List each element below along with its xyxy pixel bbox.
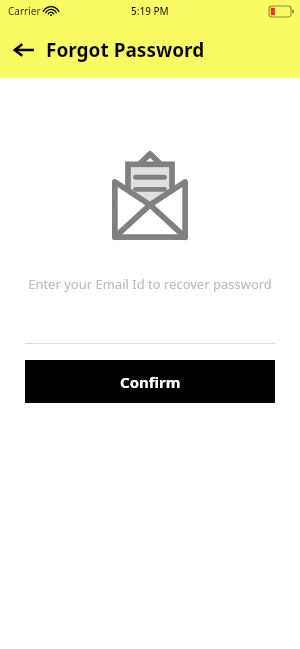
staticText: Forgot Password [46, 37, 205, 63]
button[interactable]: Back [8, 34, 40, 66]
staticText: 5:19 PM [131, 4, 169, 18]
button[interactable]: Confirm [25, 360, 275, 403]
staticText: Confirm [120, 372, 181, 392]
staticText: Enter your Email Id to recover password [0, 275, 300, 293]
staticText: Carrier [8, 4, 41, 18]
